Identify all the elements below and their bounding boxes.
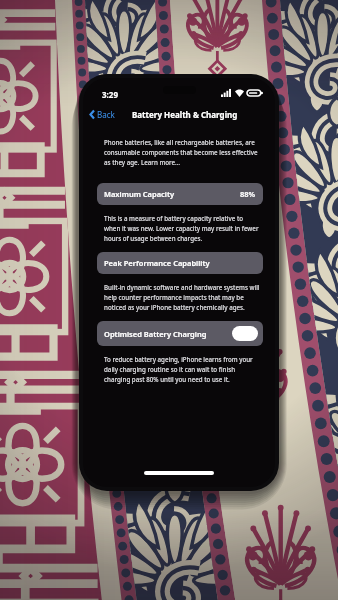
staticText: Built-in dynamic software and hardware s…: [104, 283, 261, 312]
button[interactable]: Optimised Battery Charging: [97, 321, 263, 346]
staticText: Phone batteries, like all rechargeable b…: [104, 138, 261, 167]
staticText: Battery Health & Charging: [132, 109, 238, 120]
staticText: Optimised Battery Charging: [104, 329, 207, 339]
staticText: Back: [97, 109, 115, 120]
button[interactable]: Back: [83, 109, 119, 120]
staticText: This is a measure of battery capacity re…: [104, 214, 261, 243]
staticText: 3:29: [102, 89, 118, 100]
button[interactable]: Maximum Capacity: [97, 183, 263, 205]
staticText: Maximum Capacity: [104, 189, 175, 199]
staticText: To reduce battery ageing, iPhone learns …: [104, 355, 261, 384]
staticText: 88%: [240, 189, 256, 199]
button[interactable]: Peak Performance Capability: [97, 252, 263, 274]
staticText: Peak Performance Capability: [104, 258, 210, 268]
button[interactable]: Optimised Battery Charging toggle: [232, 326, 258, 341]
